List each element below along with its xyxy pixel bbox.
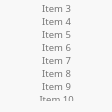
staticText: Item 10 [39, 93, 74, 101]
staticText: Item 6 [42, 41, 71, 54]
staticText: Item 9 [42, 80, 71, 93]
staticText: Item 5 [42, 28, 71, 41]
button[interactable]: Item 9 [0, 80, 112, 93]
staticText: Item 4 [42, 15, 71, 28]
button[interactable]: Item 10 [0, 93, 112, 101]
button[interactable]: Item 4 [0, 15, 112, 28]
staticText: Item 7 [42, 54, 71, 67]
button[interactable]: Item 5 [0, 28, 112, 41]
button[interactable]: Item 3 [0, 2, 112, 15]
staticText: Item 3 [42, 2, 71, 15]
button[interactable]: Item 6 [0, 41, 112, 54]
button[interactable]: Item 8 [0, 67, 112, 80]
button[interactable]: Item 7 [0, 54, 112, 67]
staticText: Item 8 [42, 67, 71, 80]
